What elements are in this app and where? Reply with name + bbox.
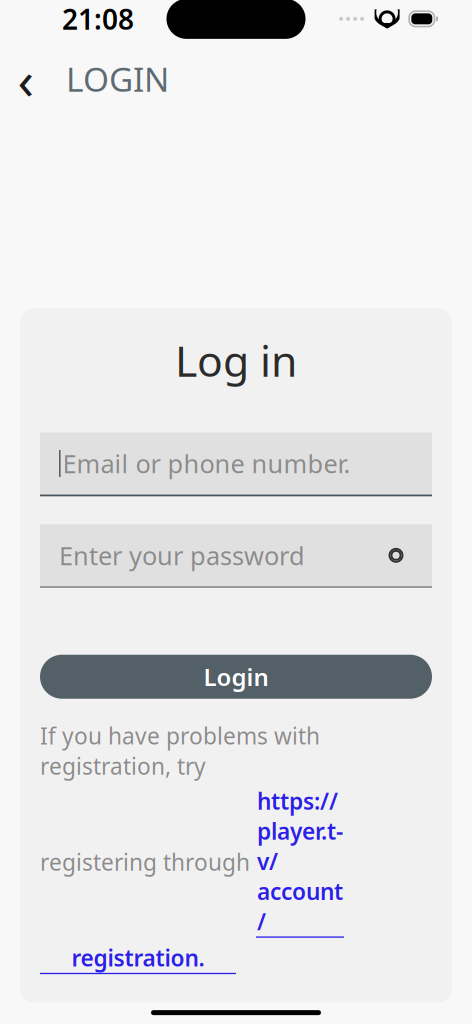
button[interactable]: Show password [379,538,413,572]
button[interactable]: Registration link [256,786,344,938]
staticText: registering through [40,847,256,877]
staticText: registration. [71,943,204,973]
staticText: Login [203,661,268,693]
staticText: Email or phone number. [63,447,351,480]
button[interactable]: Login [40,655,432,699]
staticText: Enter your password [59,538,305,572]
button[interactable]: Registration link continued [40,943,236,974]
staticText: 21:08 [62,0,134,37]
button[interactable]: Back [4,57,48,101]
staticText: LOGIN [66,57,169,101]
staticText: ‹ [17,43,34,114]
staticText: If you have problems with registration, … [40,721,320,781]
staticText: Log in [175,332,297,389]
staticText: https://player.tv/account/ [257,786,343,936]
